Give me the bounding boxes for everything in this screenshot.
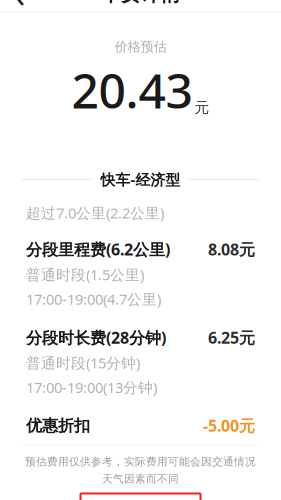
staticText: 17:00-19:00(13分钟) [26,377,157,397]
staticText: 天气因素而不同 [102,472,179,485]
staticText: 普通时段(15分钟) [26,353,140,373]
button[interactable]: 计价规则详情 [80,493,200,500]
staticText: 普通时段(1.5公里) [26,265,144,284]
staticText: 元 [194,99,209,117]
staticText: 分段里程费(6.2公里) [26,239,170,260]
staticText: 预估费用仅供参考，实际费用可能会因交通情况 [25,455,256,468]
staticText: 20.43 [71,58,192,122]
staticText: ‹ [14,0,25,17]
staticText: 超过7.0公里(2.2公里) [26,203,164,223]
button[interactable]: 返回 [0,0,40,11]
staticText: 优惠折扣 [26,416,90,435]
staticText: 快车-经济型 [100,170,180,189]
staticText: 分段时长费(28分钟) [26,327,166,348]
staticText: -5.00元 [203,415,255,436]
staticText: 8.08元 [208,239,255,260]
staticText: 车费详情 [100,0,180,6]
staticText: 17:00-19:00(4.7公里) [26,289,161,309]
staticText: 价格预估 [114,38,166,55]
staticText: 6.25元 [208,327,255,348]
